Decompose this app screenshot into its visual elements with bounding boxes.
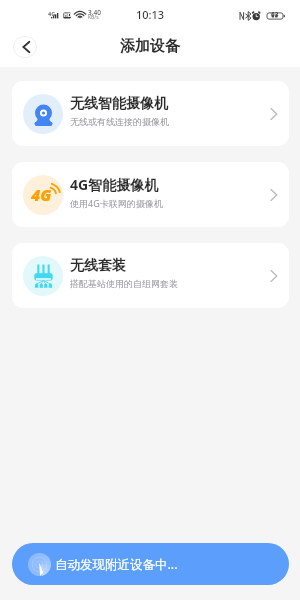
staticText: 无线套装: [70, 257, 126, 275]
staticText: 4G智能摄像机: [70, 175, 159, 194]
button[interactable]: Back: [13, 36, 37, 58]
staticText: 4G: [48, 10, 56, 17]
staticText: 无线智能摄像机: [70, 95, 168, 113]
staticText: KB/s: [88, 14, 99, 21]
staticText: 搭配基站使用的自组网套装: [70, 278, 178, 289]
button[interactable]: 自动发现附近设备中...: [12, 543, 289, 585]
staticText: 自动发现附近设备中...: [55, 556, 178, 573]
button[interactable]: 无线套装: [12, 243, 289, 308]
staticText: HD: [64, 12, 72, 19]
staticText: 4G: [31, 184, 52, 206]
staticText: 无线或有线连接的摄像机: [70, 116, 169, 127]
staticText: 使用4G卡联网的摄像机: [70, 197, 163, 209]
staticText: 63: [271, 10, 279, 19]
staticText: 10:13: [136, 7, 165, 22]
button[interactable]: 4G: [12, 162, 289, 227]
staticText: 3.40: [88, 8, 101, 17]
button[interactable]: 无线智能摄像机: [12, 81, 289, 146]
staticText: 添加设备: [120, 37, 180, 56]
